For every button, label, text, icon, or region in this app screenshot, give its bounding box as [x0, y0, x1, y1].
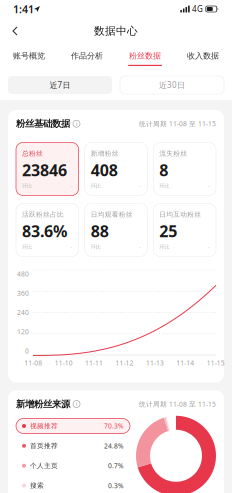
staticText: 环比 — [22, 183, 32, 189]
staticText: i — [76, 400, 77, 408]
staticText: 新增粉丝 — [91, 149, 119, 158]
staticText: - — [208, 243, 210, 250]
staticText: 流失粉丝 — [159, 149, 187, 158]
staticText: 环比 — [159, 183, 169, 189]
staticText: 23846 — [22, 159, 67, 181]
staticText: 日均观看粉丝 — [91, 210, 133, 219]
staticText: 近30日 — [159, 80, 185, 90]
staticText: 总粉丝 — [22, 149, 43, 158]
staticText: 作品分析 — [71, 51, 103, 61]
staticText: - — [71, 243, 73, 250]
staticText: 4G — [192, 4, 203, 14]
staticText: 日均互动粉丝 — [159, 210, 201, 219]
staticText: - — [208, 182, 210, 189]
staticText: 首页推荐 — [30, 442, 58, 450]
staticText: 统计周期 11-08 至 11-15 — [139, 119, 216, 128]
staticText: 83.6% — [22, 220, 67, 242]
staticText: 408 — [91, 159, 118, 181]
staticText: i — [76, 120, 77, 127]
staticText: 数据中心 — [94, 24, 138, 37]
staticText: 70.3% — [104, 422, 124, 430]
staticText: 环比 — [22, 244, 32, 250]
staticText: 粉丝基础数据 — [16, 118, 70, 129]
staticText: 480 — [17, 269, 29, 278]
button[interactable]: 搜索 — [16, 478, 130, 493]
button[interactable]: 近30日 — [120, 76, 224, 94]
staticText: 新增粉丝来源 — [16, 398, 70, 410]
button[interactable]: 个人主页 — [16, 458, 130, 473]
button[interactable]: 近7日 — [8, 76, 112, 94]
staticText: 11-14 — [176, 358, 194, 367]
staticText: 360 — [17, 289, 29, 298]
staticText: 个人主页 — [30, 462, 58, 470]
button[interactable]: 作品分析 — [58, 44, 116, 70]
staticText: 240 — [17, 308, 29, 317]
button[interactable]: 收入数据 — [174, 44, 232, 70]
staticText: 0.3% — [108, 481, 124, 490]
staticText: 11-12 — [115, 358, 133, 367]
staticText: 环比 — [91, 244, 101, 250]
staticText: - — [139, 182, 141, 189]
staticText: 11-15 — [207, 358, 225, 367]
staticText: 账号概览 — [13, 51, 45, 61]
button[interactable]: 首页推荐 — [16, 438, 130, 453]
staticText: 24.8% — [104, 441, 124, 450]
button[interactable]: 粉丝数据 — [116, 44, 174, 70]
button[interactable]: 返回 — [0, 18, 30, 44]
staticText: 活跃粉丝占比 — [22, 210, 64, 219]
button[interactable]: 视频推荐 — [16, 419, 130, 433]
button[interactable]: 账号概览 — [0, 44, 58, 70]
staticText: 搜索 — [30, 481, 44, 490]
staticText: 粉丝数据 — [129, 51, 161, 61]
staticText: 25 — [159, 220, 177, 242]
staticText: 11-11 — [85, 358, 103, 367]
staticText: 0.7% — [108, 461, 124, 470]
staticText: - — [71, 182, 73, 189]
staticText: 120 — [17, 327, 29, 336]
staticText: 环比 — [159, 244, 169, 250]
staticText: 近7日 — [49, 80, 70, 90]
staticText: 11-10 — [55, 358, 73, 367]
staticText: 统计周期 11-08 至 11-15 — [139, 400, 216, 408]
staticText: 环比 — [91, 183, 101, 189]
staticText: 8 — [159, 159, 168, 181]
staticText: 11-08 — [24, 358, 42, 367]
staticText: 0 — [25, 347, 29, 355]
staticText: 88 — [91, 220, 109, 242]
staticText: - — [139, 243, 141, 250]
staticText: 视频推荐 — [30, 422, 58, 430]
staticText: 收入数据 — [187, 51, 219, 61]
staticText: 1:41 — [13, 2, 34, 16]
staticText: 11-13 — [146, 358, 164, 367]
